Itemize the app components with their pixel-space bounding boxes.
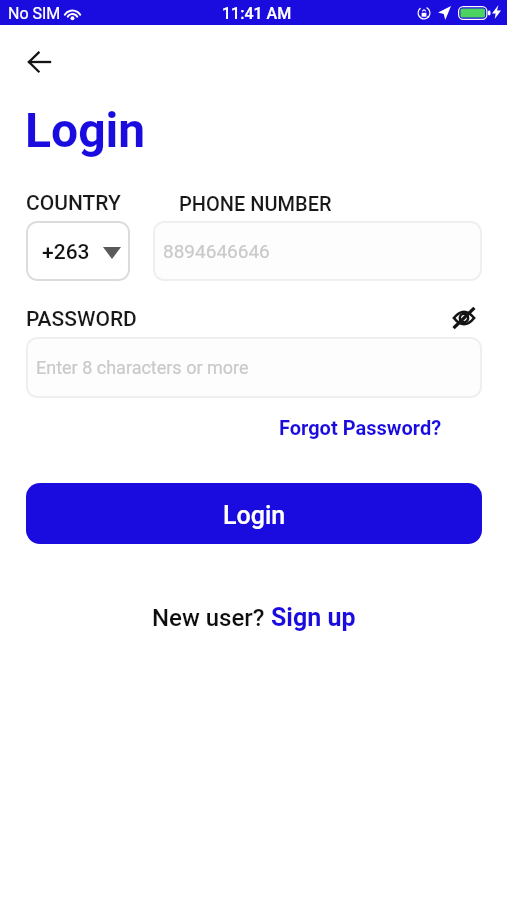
button[interactable]: Back — [18, 41, 60, 83]
staticText: Login — [223, 501, 286, 530]
button[interactable]: 8894646646 — [153, 221, 482, 281]
staticText: 11:41 AM — [222, 4, 292, 23]
staticText: +263 — [42, 240, 90, 265]
staticText: No SIM — [8, 4, 61, 23]
staticText: Enter 8 characters or more — [36, 357, 249, 378]
staticText: PASSWORD — [26, 307, 137, 332]
staticText: COUNTRY — [26, 191, 121, 216]
button[interactable]: Forgot Password? — [279, 416, 442, 439]
staticText: PHONE NUMBER — [179, 192, 332, 215]
button[interactable]: Show password — [446, 300, 482, 336]
staticText: Login — [25, 102, 146, 158]
button[interactable]: Enter 8 characters or more — [26, 337, 482, 398]
staticText: New user? — [152, 604, 271, 632]
button[interactable]: Login — [26, 483, 482, 544]
staticText: 8894646646 — [163, 240, 270, 262]
button[interactable]: +263 — [26, 221, 130, 281]
button[interactable]: Sign up — [271, 603, 356, 632]
